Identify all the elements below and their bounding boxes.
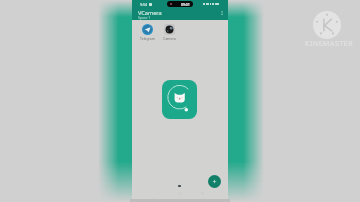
button[interactable]: Camera	[158, 24, 180, 41]
staticText: Space 1	[138, 15, 151, 20]
staticText: KINEMASTER	[305, 39, 354, 49]
button[interactable]: Telegram	[136, 24, 158, 41]
staticText: 09:01	[181, 2, 190, 7]
button[interactable]: Add app	[208, 175, 221, 188]
button[interactable]: VCamera	[162, 80, 197, 119]
staticText: Telegram	[140, 36, 155, 41]
button[interactable]: More options	[217, 8, 227, 18]
staticText: 9:54	[140, 2, 148, 7]
staticText: VCamera	[138, 9, 162, 17]
staticText: Camera	[163, 36, 176, 41]
